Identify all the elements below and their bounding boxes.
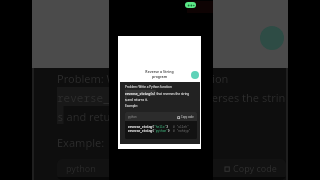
- staticText: Copy code: [233, 162, 277, 174]
- staticText: Copy code: [181, 115, 194, 119]
- staticText: Problem: Write a Python function reverse…: [125, 85, 190, 102]
- staticText: python: [128, 115, 137, 119]
- staticText: Example:: [125, 104, 138, 108]
- button[interactable]: Recording indicator: [185, 2, 196, 8]
- staticText: Problem: Write a Python function reverse…: [57, 71, 286, 124]
- staticText: Example:: [57, 135, 105, 150]
- staticText: reverse_string("python") # "nohtyp": [128, 129, 191, 133]
- staticText: reverse_string("hello") # "olleh": [128, 125, 189, 129]
- staticText: python: [66, 162, 96, 174]
- staticText: Reverse a String program: [145, 69, 174, 79]
